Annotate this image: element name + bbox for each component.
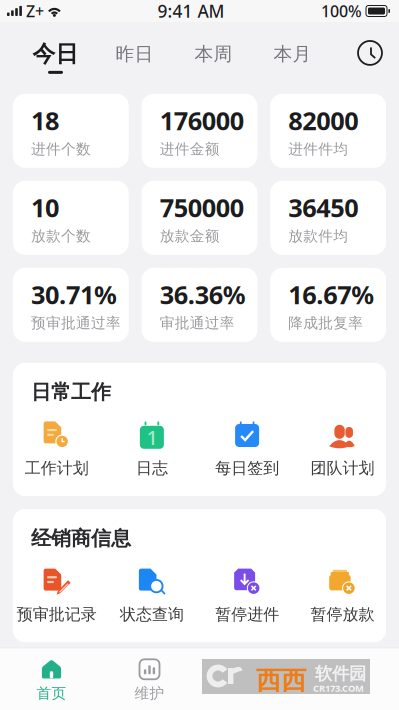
staticText: 日常工作 [31, 380, 111, 404]
button[interactable]: 暂停放款 [295, 567, 390, 624]
button[interactable]: 预审批记录 [9, 567, 104, 624]
staticText: 经销商信息 [31, 526, 131, 551]
staticText: 本周 [194, 42, 232, 65]
staticText: 西西 [256, 665, 306, 696]
staticText: 预审批通过率 [31, 314, 121, 332]
staticText: CR173.COM [313, 682, 364, 694]
staticText: 放款个数 [31, 227, 91, 245]
staticText: 状态查询 [120, 605, 184, 624]
staticText: 首页 [36, 684, 66, 702]
staticText: 176000 [160, 103, 244, 137]
staticText: 9:41 AM [157, 0, 224, 22]
staticText: 暂停放款 [310, 605, 374, 624]
staticText: 日志 [136, 458, 168, 478]
staticText: Z+ [22, 0, 48, 22]
staticText: 16.67% [288, 277, 374, 311]
staticText: 36450 [288, 190, 358, 224]
staticText: 团队计划 [310, 458, 374, 478]
staticText: 暂停进件 [215, 605, 279, 624]
staticText: 10 [31, 190, 59, 224]
staticText: 今日 [32, 40, 78, 68]
staticText: 放款件均 [288, 227, 348, 245]
staticText: 降成批复率 [288, 314, 363, 332]
button[interactable]: 维护 [103, 648, 196, 702]
button[interactable]: 首页 [0, 648, 103, 702]
staticText: 1 [146, 424, 157, 451]
button[interactable]: 本月 [253, 24, 332, 81]
button[interactable]: 团队计划 [295, 420, 390, 478]
staticText: 30.71% [31, 277, 117, 311]
staticText: 18 [31, 103, 59, 137]
button[interactable]: 昨日 [95, 24, 174, 81]
staticText: 750000 [160, 190, 244, 224]
button[interactable]: 今日 [16, 22, 95, 84]
staticText: 100% [321, 0, 366, 22]
staticText: 维护 [134, 684, 164, 702]
button[interactable]: 历史记录 [349, 32, 391, 74]
staticText: 进件件均 [288, 140, 348, 158]
staticText: 预审批记录 [17, 605, 97, 624]
staticText: 放款金额 [160, 227, 220, 245]
staticText: 进件个数 [31, 140, 91, 158]
button[interactable]: 状态查询 [104, 567, 199, 624]
staticText: 软件园 [315, 663, 366, 684]
staticText: 进件金额 [160, 140, 220, 158]
button[interactable]: 暂停进件 [199, 567, 295, 624]
button[interactable]: 1 [104, 420, 199, 478]
button[interactable]: 本周 [174, 24, 253, 81]
staticText: 本月 [273, 42, 311, 65]
staticText: 82000 [288, 103, 358, 137]
staticText: 每日签到 [215, 458, 279, 478]
button[interactable]: 每日签到 [199, 420, 295, 478]
staticText: 36.36% [160, 277, 246, 311]
staticText: 工作计划 [25, 458, 89, 478]
staticText: 审批通过率 [160, 314, 235, 332]
staticText: 昨日 [115, 42, 153, 65]
button[interactable]: 工作计划 [9, 420, 104, 478]
